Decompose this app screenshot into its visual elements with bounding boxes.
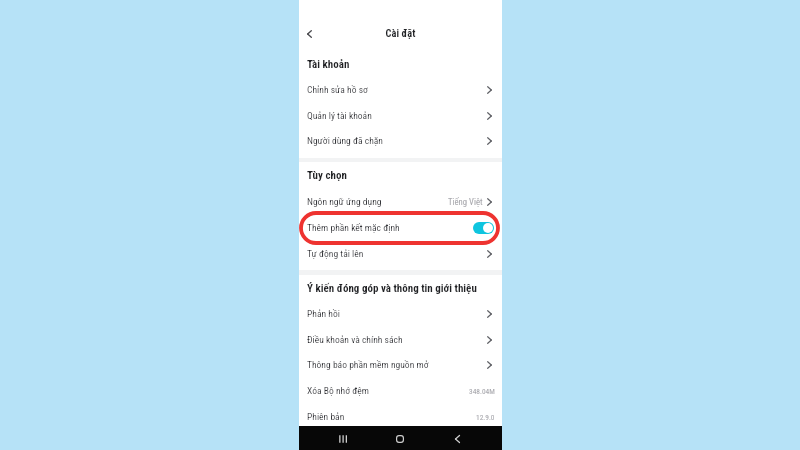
staticText: Tùy chọn — [307, 169, 347, 182]
button[interactable]: Thông báo phần mềm nguồn mở — [299, 349, 502, 375]
button[interactable]: Người dùng đã chặn — [299, 125, 502, 151]
staticText: 12.9.0 — [476, 413, 495, 422]
staticText: Xóa Bộ nhớ đệm — [307, 385, 369, 396]
button[interactable]: Home — [390, 429, 410, 449]
button[interactable]: Back — [447, 429, 467, 449]
button[interactable]: Ngôn ngữ ứng dụng — [299, 186, 502, 212]
button[interactable]: Recent apps — [333, 429, 353, 449]
staticText: Tài khoản — [307, 58, 350, 71]
staticText: Phiên bản — [307, 411, 345, 422]
staticText: 348.04M — [469, 387, 495, 396]
staticText: Ngôn ngữ ứng dụng — [307, 196, 382, 207]
button[interactable]: Back — [301, 25, 318, 43]
staticText: Quản lý tài khoản — [307, 110, 372, 121]
button[interactable]: Phiên bản — [299, 401, 502, 427]
button[interactable]: Quản lý tài khoản — [299, 100, 502, 126]
staticText: Thêm phần kết mặc định — [307, 222, 400, 233]
button[interactable]: Chỉnh sửa hồ sơ — [299, 74, 502, 100]
staticText: Người dùng đã chặn — [307, 135, 383, 146]
staticText: Ý kiến đóng góp và thông tin giới thiệu — [307, 282, 477, 295]
staticText: Điều khoản và chính sách — [307, 334, 403, 345]
button[interactable]: Thêm phần kết mặc định — [299, 212, 502, 238]
button[interactable]: Điều khoản và chính sách — [299, 324, 502, 350]
button[interactable]: Tự động tải lên — [299, 238, 502, 264]
button[interactable]: Phản hồi — [299, 298, 502, 324]
staticText: Tự động tải lên — [307, 248, 364, 259]
staticText: Phản hồi — [307, 308, 340, 319]
staticText: Chỉnh sửa hồ sơ — [307, 84, 368, 95]
button[interactable]: Xóa Bộ nhớ đệm — [299, 375, 502, 401]
staticText: Tiếng Việt — [448, 197, 483, 207]
staticText: Cài đặt — [299, 27, 502, 39]
staticText: Thông báo phần mềm nguồn mở — [307, 359, 429, 370]
